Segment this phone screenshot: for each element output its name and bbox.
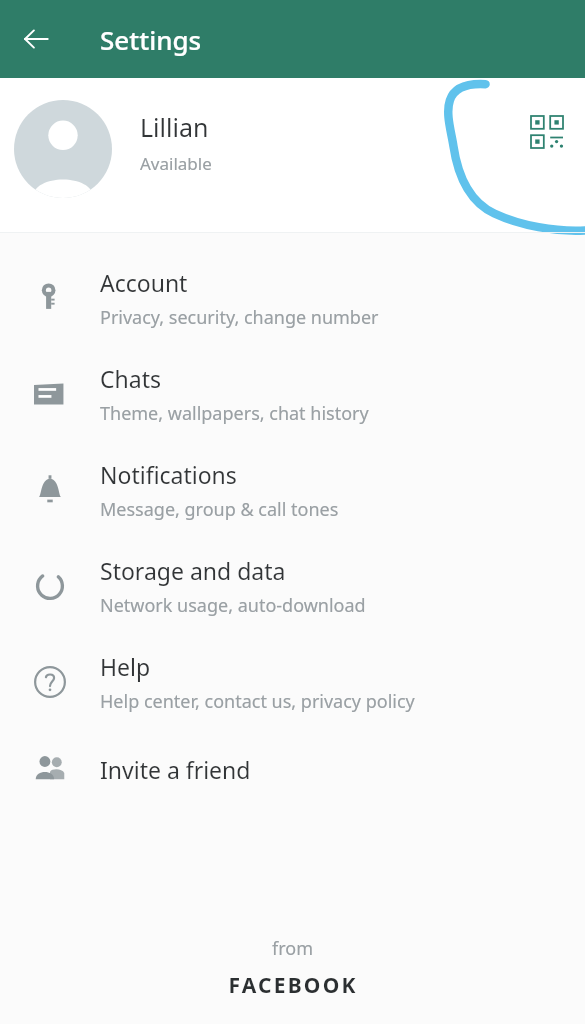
staticText: Privacy, security, change number xyxy=(100,305,379,330)
staticText: Help xyxy=(100,651,151,682)
staticText: Invite a friend xyxy=(100,754,251,785)
button[interactable]: Lillian xyxy=(0,78,585,232)
staticText: Network usage, auto-download xyxy=(100,593,366,618)
staticText: Help center, contact us, privacy policy xyxy=(100,689,415,714)
button[interactable]: Chats xyxy=(0,346,585,442)
staticText: Available xyxy=(140,152,212,175)
button[interactable]: Notifications xyxy=(0,442,585,538)
button[interactable]: Account xyxy=(0,250,585,346)
staticText: from xyxy=(272,936,313,961)
button[interactable]: Storage and data xyxy=(0,538,585,634)
staticText: FACEBOOK xyxy=(228,971,358,1000)
staticText: Chats xyxy=(100,363,161,394)
staticText: Account xyxy=(100,267,188,298)
button[interactable]: Invite a friend xyxy=(0,730,585,808)
staticText: Notifications xyxy=(100,459,237,490)
staticText: Message, group & call tones xyxy=(100,497,339,522)
staticText: Settings xyxy=(100,22,202,57)
staticText: Theme, wallpapers, chat history xyxy=(100,401,369,426)
staticText: Lillian xyxy=(140,110,209,144)
button[interactable]: Back xyxy=(10,13,62,65)
button[interactable]: QR code xyxy=(523,108,571,156)
button[interactable]: Help xyxy=(0,634,585,730)
staticText: Storage and data xyxy=(100,555,286,586)
